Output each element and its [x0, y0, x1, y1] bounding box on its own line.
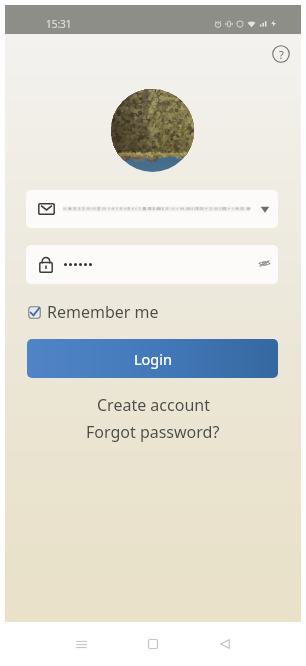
button[interactable]: Home	[135, 626, 171, 662]
staticText: 15:31	[46, 17, 72, 31]
button[interactable]: Help	[266, 39, 296, 69]
button[interactable]: Create account	[5, 394, 301, 416]
staticText: Login	[134, 349, 172, 369]
button[interactable]: Recent apps	[63, 626, 99, 662]
button[interactable]: Show password	[254, 255, 274, 275]
button[interactable]: Login	[27, 339, 278, 378]
button[interactable]: Show password	[26, 245, 278, 284]
staticText: Forgot password?	[86, 421, 220, 443]
staticText: ?	[279, 47, 284, 62]
button[interactable]	[26, 190, 278, 228]
button[interactable]	[111, 89, 194, 172]
staticText: Create account	[97, 394, 210, 416]
button[interactable]: Forgot password?	[5, 421, 301, 443]
button[interactable]: Back	[207, 626, 243, 662]
button[interactable]: Remember me	[28, 301, 159, 323]
staticText: Remember me	[47, 301, 159, 323]
